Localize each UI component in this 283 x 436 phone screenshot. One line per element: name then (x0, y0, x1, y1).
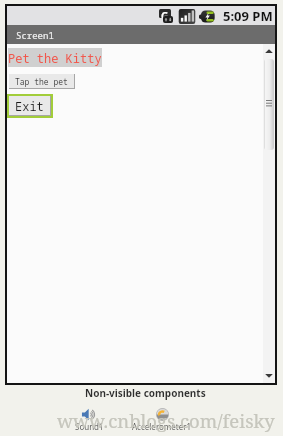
staticText: Tap the pet (15, 76, 68, 87)
staticText: Exit (15, 98, 44, 114)
button[interactable]: Pet the Kitty (8, 48, 102, 67)
staticText: 5:09 PM (223, 7, 273, 25)
staticText: Screen1 (16, 29, 54, 41)
staticText: Accelerometer1 (132, 421, 192, 432)
button[interactable]: Exit (9, 96, 51, 116)
staticText: G (161, 9, 169, 18)
staticText: Pet the Kitty (8, 50, 102, 66)
button[interactable]: Sound1 (62, 408, 116, 432)
other: Accelerometer1 (156, 408, 169, 421)
button[interactable]: Scroll down (263, 369, 275, 383)
staticText: www.cnblogs.com/feisky (57, 408, 275, 433)
staticText: Sound1 (75, 421, 104, 432)
button[interactable]: Scroll up (263, 44, 275, 58)
button[interactable]: Tap the pet (9, 74, 74, 88)
other: Sound1 (81, 408, 97, 421)
button[interactable] (264, 59, 274, 150)
button[interactable]: Accelerometer1 (122, 408, 202, 432)
staticText: Non-visible components (85, 386, 206, 400)
